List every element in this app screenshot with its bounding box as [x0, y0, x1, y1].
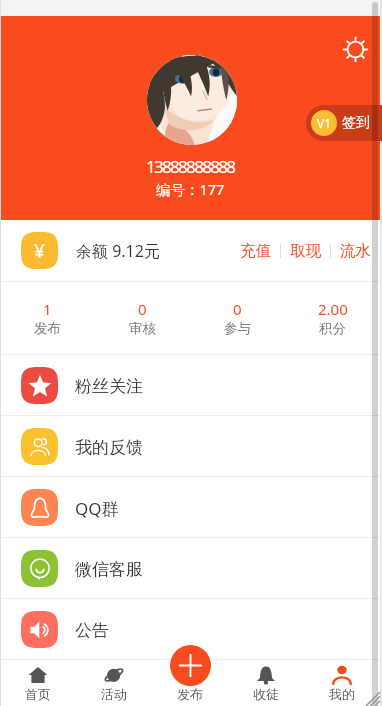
staticText: ¥	[34, 238, 45, 264]
staticText: 0	[138, 299, 147, 319]
staticText: QQ群	[75, 497, 119, 520]
staticText: 微信客服	[75, 559, 143, 580]
button[interactable]: 活动	[76, 660, 152, 706]
button[interactable]: 我的反馈	[0, 416, 380, 476]
button[interactable]: 2.00	[285, 282, 380, 354]
button[interactable]: 我的	[304, 660, 380, 706]
staticText: 发布	[177, 686, 203, 702]
button[interactable]: 取现	[290, 241, 321, 261]
staticText: 余额 9.12元	[76, 240, 160, 262]
button[interactable]: V1	[306, 105, 382, 141]
staticText: 1	[43, 299, 52, 319]
staticText: 粉丝关注	[75, 376, 143, 397]
staticText: 编号：177	[156, 179, 225, 199]
button[interactable]: 充值	[240, 241, 271, 261]
button[interactable]: 0	[95, 282, 190, 354]
button[interactable]: ¥	[0, 220, 380, 281]
button[interactable]: 1	[0, 282, 95, 354]
staticText: 13888888888	[146, 155, 235, 178]
staticText: 签到	[342, 114, 370, 132]
button[interactable]: 粉丝关注	[0, 355, 380, 415]
staticText: 发布	[34, 320, 61, 337]
staticText: 我的	[329, 686, 355, 702]
button[interactable]: 0	[190, 282, 285, 354]
button[interactable]: QQ群	[0, 477, 380, 537]
button[interactable]: 头像	[147, 55, 237, 145]
staticText: 收徒	[253, 686, 279, 702]
button[interactable]: 公告	[0, 599, 380, 659]
button[interactable]: 微信客服	[0, 538, 380, 598]
staticText: 我的反馈	[75, 437, 143, 458]
staticText: 参与	[224, 320, 251, 337]
staticText: 首页	[25, 686, 51, 702]
staticText: V1	[317, 115, 332, 131]
staticText: 0	[233, 299, 242, 319]
button[interactable]: 发布	[170, 645, 211, 686]
staticText: 活动	[101, 686, 127, 702]
button[interactable]: 首页	[0, 660, 76, 706]
staticText: 公告	[75, 620, 109, 641]
button[interactable]: 发布	[152, 660, 228, 706]
button[interactable]: 设置	[343, 37, 368, 62]
staticText: 审核	[129, 320, 156, 337]
staticText: 积分	[319, 320, 346, 337]
button[interactable]: 流水	[340, 241, 371, 261]
button[interactable]: 收徒	[228, 660, 304, 706]
staticText: 2.00	[318, 299, 348, 319]
